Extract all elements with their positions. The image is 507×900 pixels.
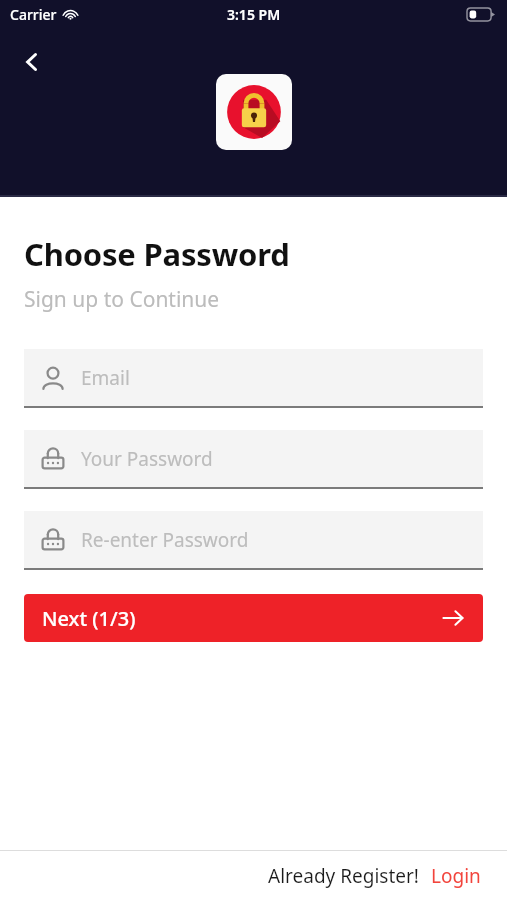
staticText: 3:15 PM <box>227 5 281 24</box>
button[interactable]: Your Password <box>24 430 483 489</box>
staticText: Next (1/3) <box>42 605 136 632</box>
button[interactable]: Next (1/3) <box>24 594 483 642</box>
button[interactable]: Re-enter Password <box>24 511 483 570</box>
staticText: Re-enter Password <box>81 527 249 553</box>
staticText: Already Register! <box>268 863 419 889</box>
staticText: Login <box>431 863 481 889</box>
staticText: Sign up to Continue <box>24 285 220 314</box>
staticText: Email <box>81 365 130 391</box>
button[interactable]: Login <box>429 861 483 891</box>
staticText: Your Password <box>81 446 213 472</box>
staticText: Choose Password <box>24 233 290 275</box>
button[interactable]: Back <box>12 42 52 82</box>
staticText: Carrier <box>10 5 57 24</box>
button[interactable]: Email <box>24 349 483 408</box>
